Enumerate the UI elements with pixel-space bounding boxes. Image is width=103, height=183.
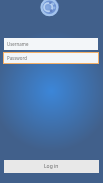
staticText: Username bbox=[7, 41, 29, 47]
button[interactable]: Log in bbox=[4, 160, 99, 173]
button[interactable]: Username bbox=[4, 38, 98, 50]
staticText: Log in bbox=[44, 163, 59, 170]
button[interactable]: Password bbox=[4, 53, 98, 63]
staticText: Password bbox=[7, 55, 27, 61]
other: App logo bbox=[41, 0, 59, 16]
